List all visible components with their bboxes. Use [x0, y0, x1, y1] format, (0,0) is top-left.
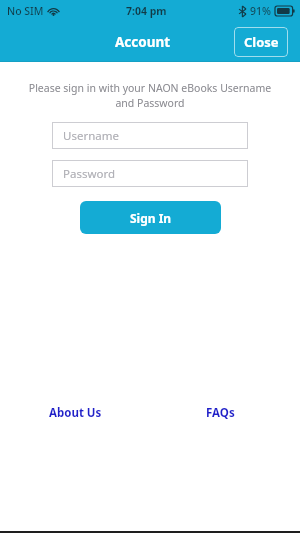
staticText: About Us [49, 405, 102, 419]
button[interactable]: About Us [45, 403, 106, 421]
staticText: FAQs [206, 405, 235, 419]
staticText: Close [244, 33, 279, 51]
button[interactable]: Sign In [80, 201, 221, 234]
staticText: No SIM [7, 4, 44, 18]
staticText: Sign In [130, 210, 172, 226]
staticText: Username [63, 128, 119, 144]
other: Bluetooth [239, 6, 246, 17]
staticText: 91% [250, 4, 271, 18]
button[interactable]: Close [234, 27, 288, 57]
other: Battery 91 percent [275, 6, 295, 16]
staticText: Please sign in with your NAON eBooks Use… [25, 81, 275, 110]
staticText: Account [115, 33, 171, 51]
button[interactable]: Password [52, 160, 248, 187]
button[interactable]: FAQs [202, 403, 239, 421]
other: Wi-Fi signal [48, 7, 59, 16]
button[interactable]: Username [52, 122, 248, 149]
staticText: Password [63, 166, 116, 182]
staticText: 7:04 pm [126, 4, 167, 18]
